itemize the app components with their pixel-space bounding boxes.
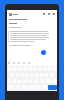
button[interactable]: Send bbox=[41, 50, 46, 55]
button[interactable]: Back bbox=[7, 10, 13, 18]
button[interactable]: Send bbox=[46, 10, 51, 18]
button[interactable]: Attach file bbox=[41, 10, 46, 18]
button[interactable]: More options bbox=[51, 10, 56, 18]
button[interactable]: Send bbox=[48, 85, 57, 90]
